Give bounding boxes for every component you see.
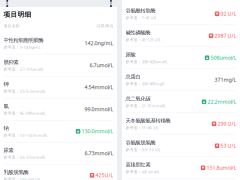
staticText: 氯 (3, 103, 8, 109)
staticText: 6.73mmol/L (84, 150, 113, 157)
staticText: 直接胆红素 (125, 161, 150, 168)
staticText: 胱抑素 (3, 59, 18, 65)
staticText: 尿素 (3, 147, 13, 153)
staticText: 总二氧化碳 (125, 95, 150, 102)
staticText: 参考值：15~40 U/L (125, 125, 158, 130)
staticText: 碱性磷酸酶 (125, 29, 150, 36)
staticText: 425U/L (95, 172, 113, 179)
button[interactable]: 谷氨酰转肽酶 (122, 3, 240, 25)
staticText: 参考值：200~400mg/L (125, 81, 164, 86)
button[interactable]: 直接胆红素 (122, 157, 240, 179)
staticText: 天冬氨酸氨基转移酶 (125, 117, 170, 124)
button[interactable]: 钠 (0, 120, 117, 142)
staticText: 299 U/L (217, 120, 236, 127)
staticText: 92 U/L (220, 10, 236, 17)
staticText: 结果/单位 (96, 23, 113, 28)
staticText: 22.2mmol/L (207, 98, 236, 105)
button[interactable]: 尿酸 (122, 47, 240, 69)
staticText: 参考值：21~31mmol/L (125, 103, 165, 108)
staticText: 508umol/L (210, 54, 236, 61)
staticText: 参考值：0.0~7.0 U/L (125, 147, 160, 152)
staticText: 项目明细 (3, 10, 31, 19)
staticText: 151.8umol/L (206, 164, 236, 171)
button[interactable]: 总蛋白 (122, 69, 240, 91)
staticText: 钾 (3, 81, 8, 87)
button[interactable]: 谷氨酸脱氢酶 (122, 135, 240, 157)
staticText: 钠 (3, 125, 8, 131)
staticText: 参考值：3.7~9.9umol/L (3, 66, 43, 72)
staticText: 乳酸脱氢酶 (3, 169, 28, 175)
staticText: 53 U/L (220, 142, 236, 149)
staticText: 参考值：≤8 umol/L (125, 169, 159, 174)
staticText: 参考值：0~140ng/mL (3, 44, 40, 50)
staticText: 参考值：3.5~5.3mmol/L (3, 88, 45, 94)
staticText: 总蛋白 (125, 73, 140, 80)
staticText: 参考值：7~45 U/L (125, 15, 156, 20)
staticText: 2987 U/L (214, 32, 236, 39)
staticText: 参考值：96~108mmol/L (3, 110, 45, 116)
button[interactable]: 乳酸脱氢酶 (0, 164, 117, 180)
staticText: 谷氨酸脱氢酶 (125, 139, 155, 146)
button[interactable]: 氯 (0, 98, 117, 120)
staticText: 中性粒细胞明胶酶 (3, 37, 43, 43)
staticText: 参考值：208~428umol/L (125, 59, 167, 64)
staticText: 371mg/L (214, 76, 236, 83)
button[interactable]: 天冬氨酸氨基转移酶 (122, 113, 240, 135)
staticText: 130.0mmol/L (81, 128, 113, 135)
staticText: 参考值：45~125 U/L (125, 37, 160, 42)
staticText: 4.54mmol/L (84, 84, 113, 91)
staticText: 谷氨酰转肽酶 (125, 7, 155, 14)
button[interactable]: 总二氧化碳 (122, 91, 240, 113)
button[interactable]: 中性粒细胞明胶酶 (0, 32, 117, 54)
button[interactable]: 钾 (0, 76, 117, 98)
staticText: 参考值：3.6~9.5mmol/L (3, 154, 45, 160)
button[interactable]: 碱性磷酸酶 (122, 25, 240, 47)
staticText: 99.0mmol/L (84, 106, 113, 113)
staticText: 项目名称 (3, 23, 19, 28)
staticText: 尿酸 (125, 51, 135, 58)
button[interactable]: 尿素 (0, 142, 117, 164)
staticText: 参考值：137~147mmol/L (3, 132, 47, 138)
staticText: 参考值：120~250 U/L (3, 176, 40, 180)
button[interactable]: 胱抑素 (0, 54, 117, 76)
staticText: 142.0ng/mL (84, 40, 113, 47)
staticText: 6.7umol/L (89, 62, 113, 69)
